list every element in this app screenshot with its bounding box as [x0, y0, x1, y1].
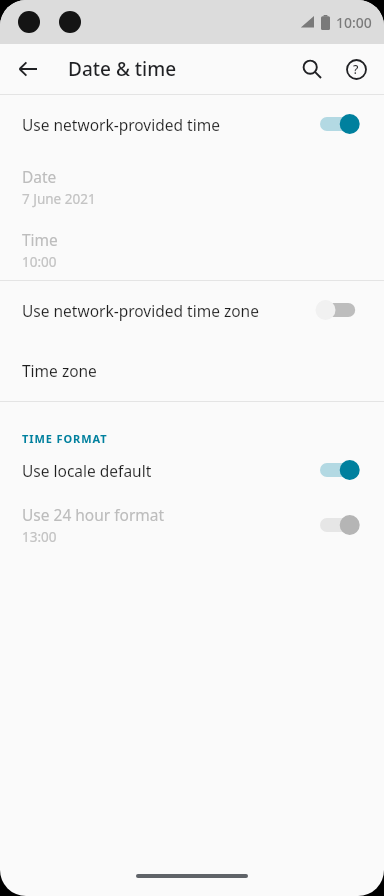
- staticText: Date: [22, 166, 57, 187]
- button[interactable]: Use network-provided time zone: [0, 281, 384, 339]
- button[interactable]: Time: [0, 220, 384, 280]
- staticText: ?: [353, 61, 359, 77]
- staticText: Use locale default: [22, 460, 152, 481]
- staticText: Date & time: [68, 56, 177, 82]
- button[interactable]: Help: [334, 47, 378, 91]
- staticText: 10:00: [22, 253, 57, 271]
- staticText: Time: [22, 229, 58, 250]
- staticText: TIME FORMAT: [22, 431, 108, 446]
- staticText: 13:00: [22, 528, 57, 546]
- button[interactable]: Back: [8, 49, 48, 89]
- staticText: 10:00: [336, 13, 372, 32]
- staticText: Use network-provided time: [22, 114, 220, 135]
- button[interactable]: Use 24 hour format: [0, 494, 384, 556]
- button[interactable]: Date: [0, 153, 384, 220]
- button[interactable]: Time zone: [0, 339, 384, 401]
- button[interactable]: Use network-provided time: [0, 95, 384, 153]
- staticText: 7 June 2021: [22, 190, 96, 208]
- staticText: Use 24 hour format: [22, 504, 165, 525]
- staticText: Time zone: [22, 360, 97, 381]
- staticText: Use network-provided time zone: [22, 300, 259, 321]
- button[interactable]: Search: [290, 47, 334, 91]
- button[interactable]: Use locale default: [0, 446, 384, 494]
